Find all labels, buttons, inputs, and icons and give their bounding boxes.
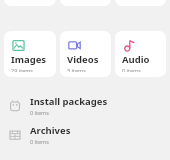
button[interactable]: Videos — [60, 31, 111, 77]
staticText: Install packages — [30, 95, 108, 108]
staticText: Images — [11, 53, 47, 66]
button[interactable]: Downloads — [60, 0, 111, 6]
staticText: Videos — [67, 53, 99, 66]
staticText: Archives — [30, 124, 71, 137]
staticText: 0 items — [122, 67, 141, 72]
staticText: 0 items — [30, 109, 49, 116]
button[interactable]: Archives — [0, 120, 170, 149]
button[interactable]: Install packages — [0, 91, 170, 120]
staticText: 0 items — [30, 138, 49, 145]
staticText: Audio — [122, 53, 150, 66]
button[interactable]: Recent — [115, 0, 166, 6]
button[interactable]: Images — [4, 31, 56, 77]
button[interactable]: Audio — [115, 31, 166, 77]
staticText: 29 items — [11, 67, 34, 72]
staticText: 3 items — [67, 67, 86, 72]
button[interactable]: Documents — [4, 0, 56, 6]
